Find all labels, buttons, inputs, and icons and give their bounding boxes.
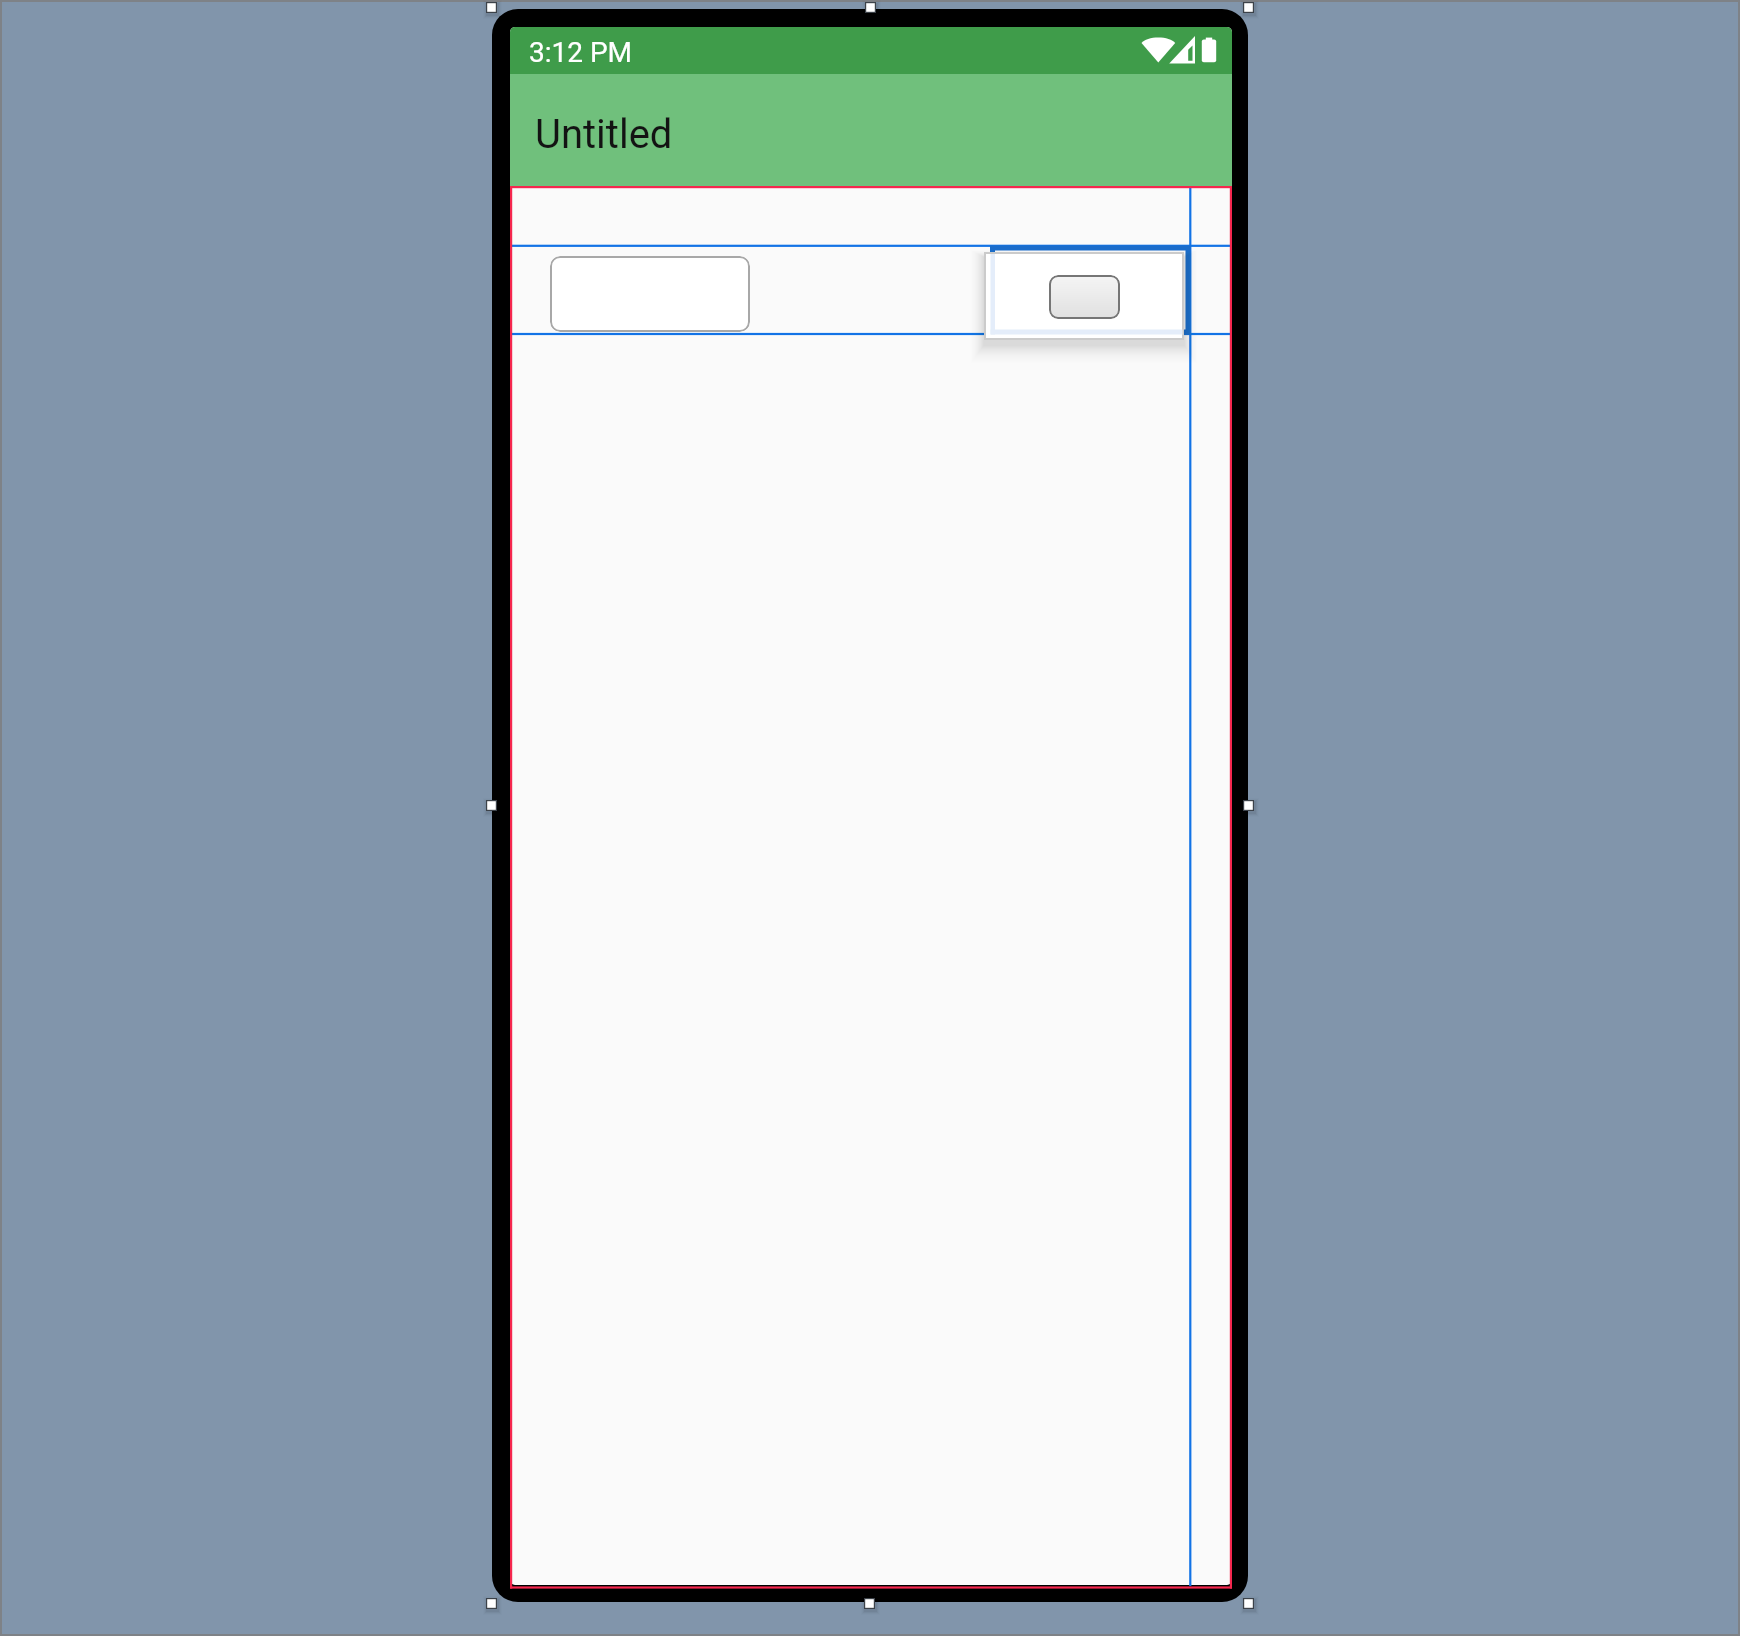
button[interactable]: Resize handle (486, 2, 497, 13)
button[interactable]: Resize handle (1243, 2, 1254, 13)
button[interactable]: Drag preview (984, 252, 1184, 340)
button[interactable]: Resize handle (486, 800, 497, 811)
button[interactable]: Resize handle (864, 1598, 875, 1609)
button[interactable]: Dragged button (1049, 275, 1120, 319)
button[interactable]: Resize handle (486, 1598, 497, 1609)
button[interactable]: Button widget (550, 256, 750, 332)
staticText: Untitled (535, 111, 673, 158)
staticText: 3:12 PM (529, 36, 633, 69)
button[interactable]: Resize handle (1243, 1598, 1254, 1609)
button[interactable]: Resize handle (865, 2, 876, 13)
button[interactable]: Resize handle (1243, 800, 1254, 811)
